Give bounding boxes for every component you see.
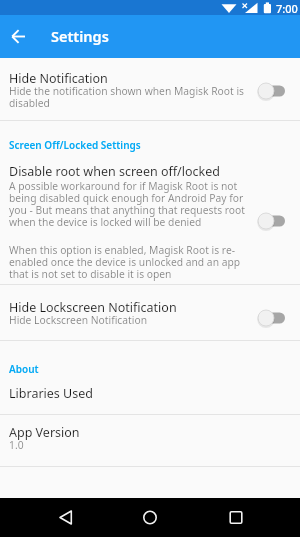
button[interactable]: Libraries Used — [0, 375, 300, 414]
button[interactable] — [6, 24, 31, 49]
staticText: disabled — [9, 96, 50, 110]
staticText: When this option is enabled, Magisk Root… — [9, 243, 236, 257]
button[interactable] — [216, 498, 256, 537]
button[interactable]: Hide Notification — [0, 58, 300, 120]
staticText: enabled once the device is unlocked and … — [9, 255, 241, 269]
staticText: Hide Lockscreen Notification — [9, 299, 177, 316]
button[interactable]: Hide Lockscreen Notification — [0, 284, 300, 340]
staticText: Hide Notification — [9, 70, 108, 87]
staticText: 7:00 — [276, 1, 298, 16]
button[interactable] — [46, 498, 86, 537]
staticText: Screen Off/Locked Settings — [9, 138, 141, 152]
staticText: Disable root when screen off/locked — [9, 163, 220, 180]
button[interactable]: Disable root when screen off/locked — [0, 150, 300, 284]
staticText: Settings — [51, 26, 109, 46]
staticText: 1.0 — [9, 438, 24, 452]
staticText: when the device is locked will be denied — [9, 215, 202, 229]
button[interactable] — [130, 498, 170, 537]
staticText: that is not set to disable it is open — [9, 267, 172, 281]
staticText: About — [9, 362, 39, 376]
staticText: Hide Lockscreen Notification — [9, 313, 148, 327]
staticText: A possible workaround for if Magisk Root… — [9, 179, 238, 193]
staticText: App Version — [9, 424, 80, 441]
staticText: Hide the notification shown when Magisk … — [9, 84, 245, 98]
staticText: Libraries Used — [9, 385, 93, 402]
staticText: you - But means that anything that reque… — [9, 203, 245, 217]
button[interactable]: App Version — [0, 414, 300, 466]
staticText: being disabled quick enough for Android … — [9, 191, 244, 205]
